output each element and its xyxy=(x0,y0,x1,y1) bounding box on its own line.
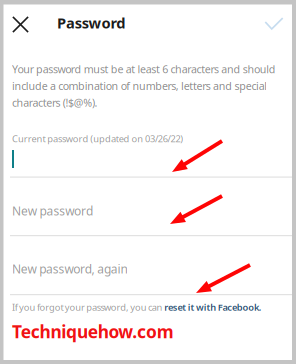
staticText: characters (!$@%). xyxy=(12,95,97,110)
button[interactable]: Save xyxy=(259,10,289,36)
staticText: reset it with Facebook. xyxy=(164,301,262,313)
staticText: include a combination of numbers, letter… xyxy=(12,79,267,93)
staticText: Your password must be at least 6 charact… xyxy=(12,62,276,76)
staticText: New password, again xyxy=(12,261,127,277)
staticText: New password xyxy=(12,203,93,219)
staticText: If you forgot your password, you can xyxy=(12,301,164,313)
staticText: Techniquehow.com xyxy=(12,320,174,343)
staticText: Password xyxy=(57,13,125,32)
staticText: Current password (updated on 03/26/22) xyxy=(12,132,183,145)
button[interactable]: Close xyxy=(3,7,37,41)
button[interactable]: reset it with Facebook. xyxy=(164,301,262,313)
